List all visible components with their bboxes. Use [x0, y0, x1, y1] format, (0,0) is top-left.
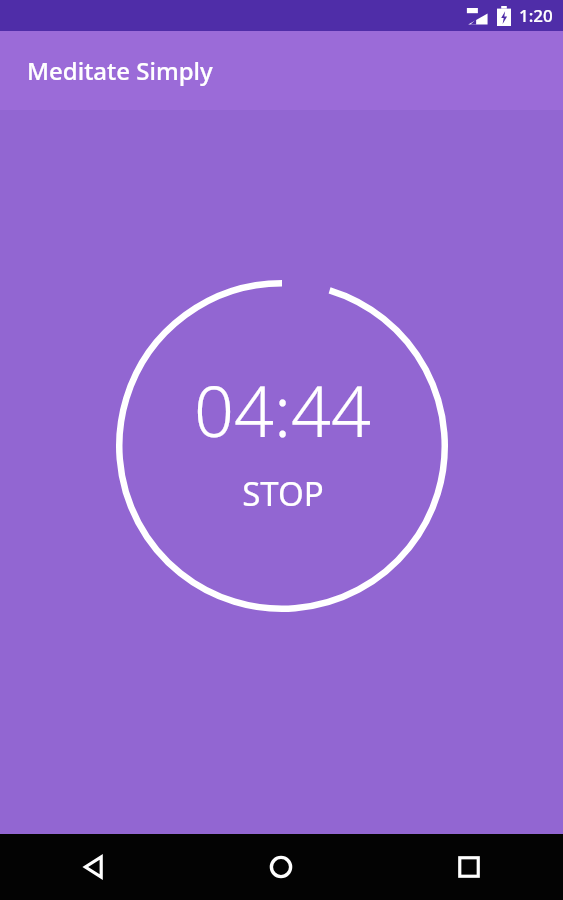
staticText: 1:20 [519, 4, 553, 27]
staticText: STOP [242, 471, 324, 516]
button[interactable]: 04:44 [114, 278, 450, 614]
button[interactable]: Home [187, 834, 375, 900]
staticText: 04:44 [194, 362, 371, 457]
button[interactable]: Back [0, 834, 187, 900]
button[interactable]: Recent apps [375, 834, 563, 900]
staticText: Meditate Simply [27, 54, 213, 87]
